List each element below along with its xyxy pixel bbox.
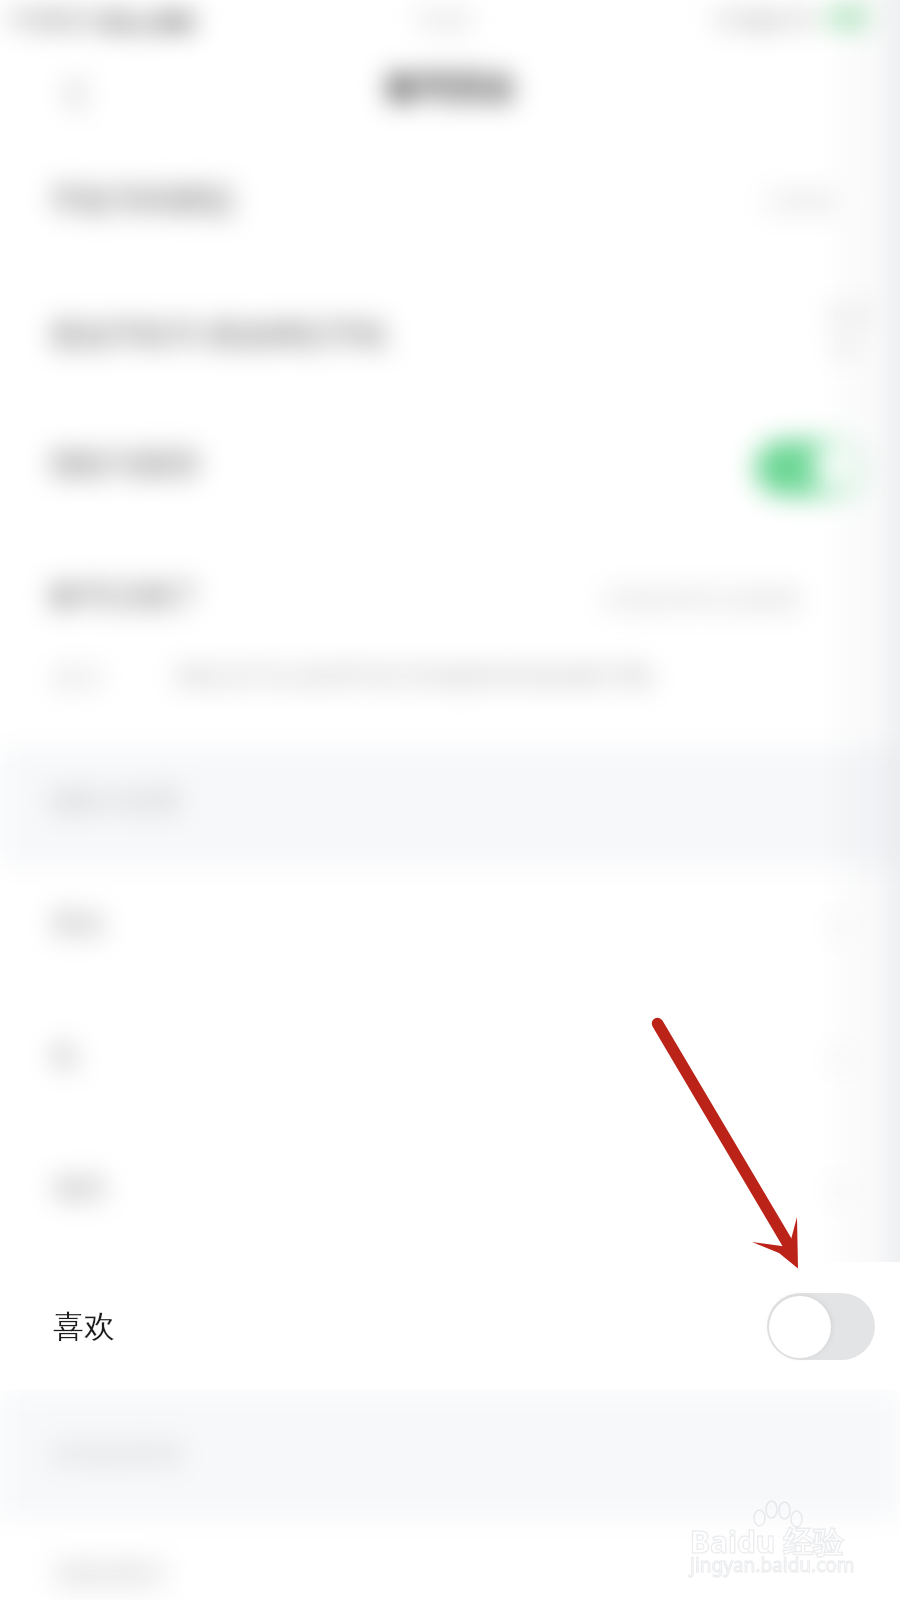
button[interactable]: 更改手机号 — [0, 270, 900, 402]
button[interactable]: 喜欢 开关 — [767, 1293, 875, 1360]
button[interactable]: 私密 — [0, 998, 900, 1130]
button[interactable]: 清除缓存 — [0, 1519, 900, 1600]
staticText: 手机号码绑定 — [50, 181, 236, 220]
staticText: 账号安全 — [387, 68, 515, 108]
button[interactable]: 账号注销 — [0, 534, 900, 666]
staticText: HD ▮ 82% — [714, 2, 818, 35]
button[interactable]: 指纹与面容 — [0, 402, 900, 534]
staticText: 喜欢 — [53, 1307, 115, 1346]
staticText: 更改手机号·更改绑定手机 — [50, 313, 389, 354]
staticText: 账号注销了 — [50, 577, 200, 615]
staticText: 指纹与面容 — [50, 445, 200, 483]
button[interactable]: 免打扰 — [0, 1130, 900, 1262]
button[interactable]: 返回 — [42, 62, 108, 128]
staticText: Baidu 经验 — [690, 1521, 844, 1562]
button[interactable]: 喜欢 — [0, 1262, 900, 1390]
staticText: 免扰 — [52, 1171, 106, 1205]
staticText: 黑名 — [52, 907, 106, 941]
staticText: jingyan.baidu.com — [690, 1552, 855, 1578]
button[interactable]: 手机号码绑定 — [0, 138, 900, 270]
staticText: 中国移动 ▮▮ ▲ ●● — [8, 3, 195, 34]
